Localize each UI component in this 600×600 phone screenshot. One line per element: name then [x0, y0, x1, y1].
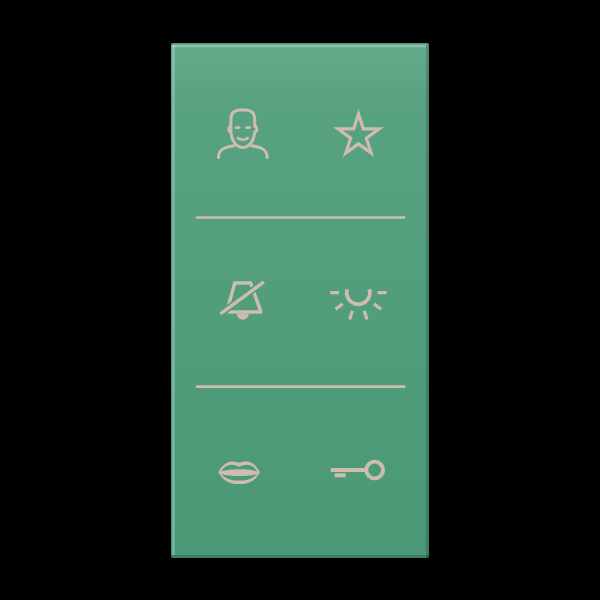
button[interactable]: Contact — [171, 43, 300, 217]
button[interactable]: Brightness — [300, 217, 429, 386]
button[interactable]: Intercom — [171, 386, 300, 558]
button[interactable]: Favourite — [300, 43, 429, 217]
button[interactable]: Door opener — [300, 386, 429, 558]
button[interactable]: Mute notifications — [171, 217, 300, 386]
